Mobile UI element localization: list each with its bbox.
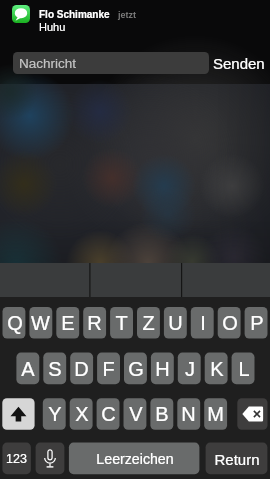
- button[interactable]: Nachricht: [13, 52, 209, 74]
- button[interactable]: J: [178, 353, 201, 385]
- staticText: W: [31, 312, 50, 334]
- staticText: Flo Schimanke: [39, 9, 110, 20]
- button[interactable]: N: [177, 398, 200, 430]
- button[interactable]: Leerzeichen: [69, 443, 200, 475]
- button[interactable]: A: [16, 353, 39, 385]
- staticText: jetzt: [118, 10, 136, 20]
- button[interactable]: Suggestion: [91, 263, 182, 297]
- button[interactable]: H: [151, 353, 174, 385]
- staticText: K: [210, 358, 224, 380]
- button[interactable]: Y: [43, 398, 66, 430]
- staticText: L: [238, 358, 250, 380]
- button[interactable]: K: [205, 353, 228, 385]
- button[interactable]: 123: [2, 443, 31, 475]
- button[interactable]: Shift: [2, 398, 34, 430]
- staticText: P: [250, 312, 264, 334]
- button[interactable]: I: [191, 307, 214, 339]
- staticText: Q: [7, 312, 23, 334]
- staticText: M: [207, 403, 224, 425]
- staticText: D: [74, 358, 89, 380]
- button[interactable]: U: [164, 307, 187, 339]
- staticText: Nachricht: [19, 56, 77, 71]
- staticText: B: [155, 403, 169, 425]
- button[interactable]: W: [29, 307, 52, 339]
- staticText: O: [222, 312, 238, 334]
- button[interactable]: M: [204, 398, 227, 430]
- staticText: V: [129, 403, 143, 425]
- button[interactable]: Return: [206, 443, 268, 475]
- staticText: X: [75, 403, 89, 425]
- button[interactable]: Backspace: [237, 398, 267, 430]
- button[interactable]: D: [70, 353, 93, 385]
- staticText: Return: [214, 451, 260, 468]
- button[interactable]: Senden: [208, 41, 270, 86]
- staticText: E: [61, 312, 75, 334]
- staticText: Y: [48, 403, 62, 425]
- button[interactable]: Dictation: [36, 443, 65, 475]
- button[interactable]: C: [97, 398, 120, 430]
- staticText: R: [87, 312, 102, 334]
- button[interactable]: T: [110, 307, 133, 339]
- staticText: Huhu: [39, 21, 66, 33]
- staticText: H: [155, 358, 170, 380]
- button[interactable]: Q: [3, 307, 26, 339]
- button[interactable]: G: [124, 353, 147, 385]
- button[interactable]: L: [232, 353, 255, 385]
- staticText: 123: [6, 452, 27, 466]
- staticText: C: [101, 403, 116, 425]
- staticText: S: [48, 358, 62, 380]
- staticText: A: [21, 358, 35, 380]
- button[interactable]: P: [245, 307, 268, 339]
- staticText: I: [200, 312, 206, 334]
- button[interactable]: R: [83, 307, 106, 339]
- button[interactable]: S: [43, 353, 66, 385]
- staticText: T: [115, 312, 128, 334]
- staticText: U: [168, 312, 183, 334]
- button[interactable]: Z: [137, 307, 160, 339]
- staticText: Leerzeichen: [96, 451, 174, 467]
- staticText: N: [181, 403, 196, 425]
- staticText: Z: [142, 312, 155, 334]
- button[interactable]: V: [124, 398, 147, 430]
- staticText: F: [102, 358, 115, 380]
- button[interactable]: O: [218, 307, 241, 339]
- button[interactable]: X: [70, 398, 93, 430]
- staticText: Senden: [213, 55, 265, 72]
- button[interactable]: E: [56, 307, 79, 339]
- staticText: J: [185, 358, 195, 380]
- button[interactable]: B: [150, 398, 173, 430]
- staticText: G: [128, 358, 144, 380]
- button[interactable]: F: [97, 353, 120, 385]
